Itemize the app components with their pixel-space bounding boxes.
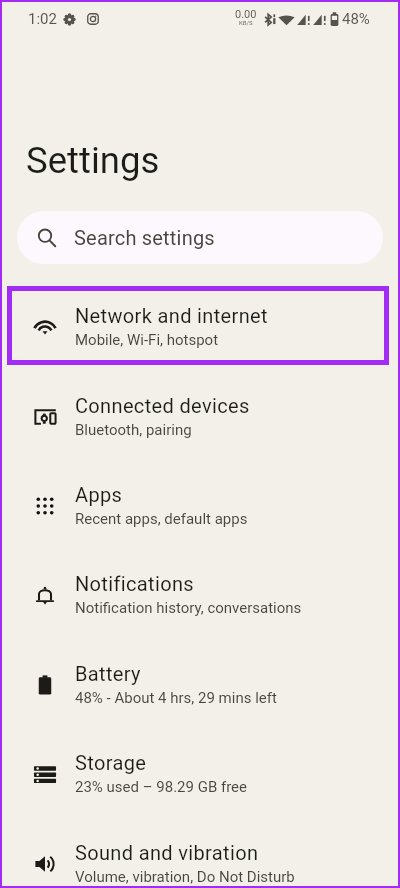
staticText: 23% used – 98.29 GB free — [75, 778, 248, 796]
staticText: Settings — [26, 139, 160, 182]
staticText: Recent apps, default apps — [75, 510, 248, 528]
staticText: Notification history, conversations — [75, 599, 302, 617]
staticText: Battery — [75, 662, 141, 685]
staticText: Sound and vibration — [75, 841, 259, 864]
staticText: 48% - About 4 hrs, 29 mins left — [75, 689, 277, 707]
button[interactable]: Network and internet — [0, 282, 400, 371]
button[interactable]: Sound and vibration — [0, 819, 400, 888]
staticText: Bluetooth, pairing — [75, 421, 192, 439]
staticText: Apps — [75, 483, 123, 506]
staticText: Volume, vibration, Do Not Disturb — [75, 868, 295, 886]
staticText: Storage — [75, 751, 147, 774]
button[interactable]: Storage — [0, 729, 400, 818]
staticText: 0.00 — [235, 8, 257, 21]
button[interactable]: Connected devices — [0, 372, 400, 461]
staticText: KB/S — [239, 19, 253, 26]
button[interactable]: Notifications — [0, 550, 400, 639]
staticText: Network and internet — [75, 304, 268, 327]
staticText: Notifications — [75, 572, 194, 595]
staticText: Connected devices — [75, 394, 250, 417]
staticText: Mobile, Wi-Fi, hotspot — [75, 331, 219, 349]
staticText: 48% — [342, 10, 370, 28]
staticText: Search settings — [74, 226, 215, 249]
button[interactable]: Apps — [0, 461, 400, 550]
button[interactable]: Battery — [0, 640, 400, 729]
staticText: 1:02 — [28, 10, 57, 28]
button[interactable]: Search settings — [17, 211, 383, 264]
